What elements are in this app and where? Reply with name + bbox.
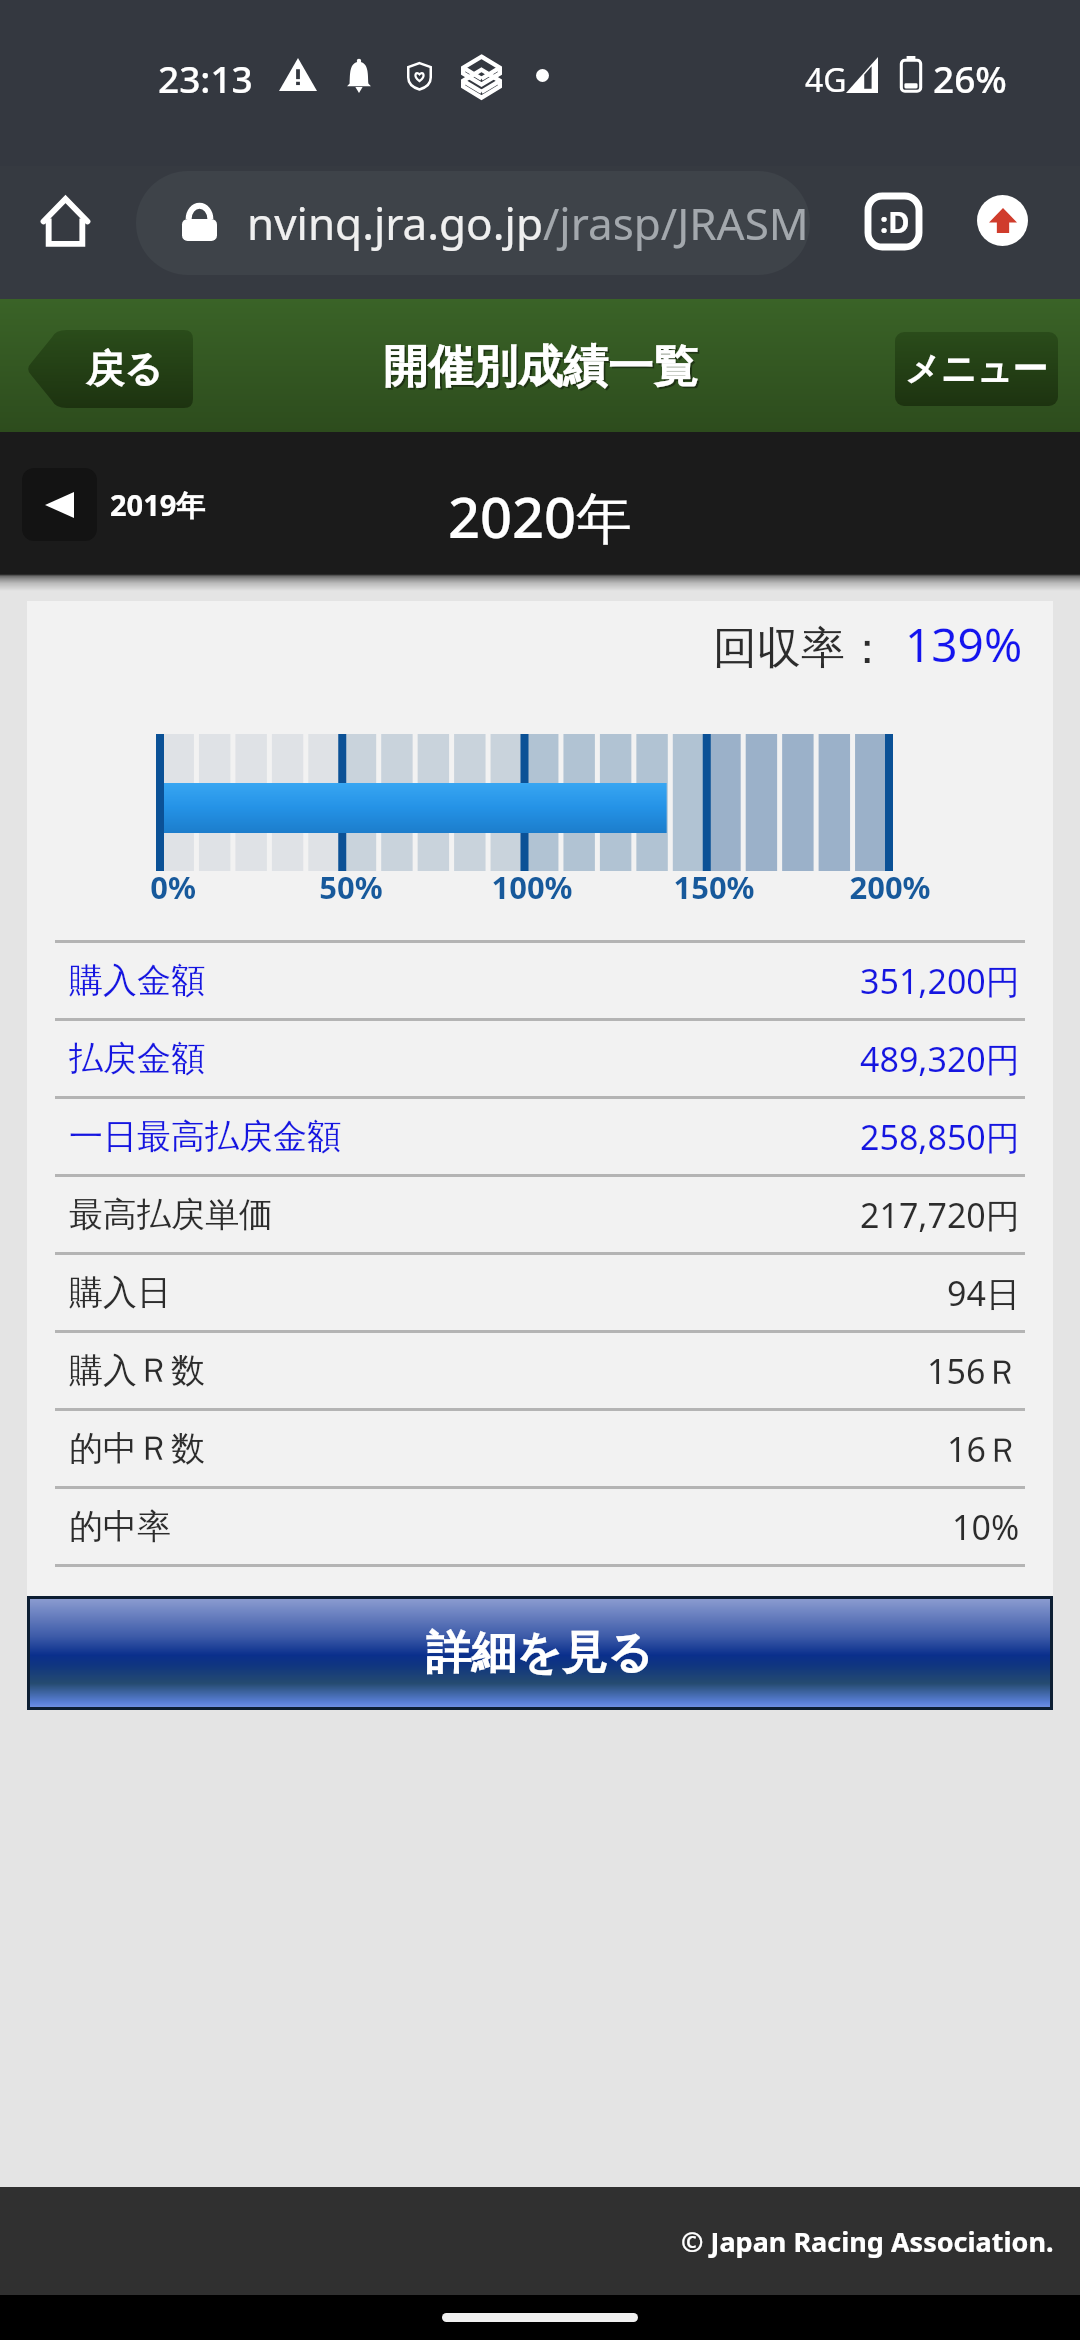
- button[interactable]: 購入日: [27, 1255, 1053, 1330]
- staticText: 258,850円: [860, 1114, 1020, 1160]
- staticText: 50%: [271, 866, 431, 908]
- staticText: 200%: [810, 866, 970, 908]
- staticText: 払戻金額: [69, 1037, 205, 1080]
- staticText: nvinq.jra.go.jp: [247, 193, 543, 253]
- staticText: 156Ｒ: [927, 1348, 1020, 1394]
- staticText: 0%: [93, 866, 253, 908]
- staticText: 351,200円: [860, 958, 1020, 1004]
- button[interactable]: nvinq.jra.go.jp: [136, 171, 810, 275]
- staticText: 139%: [905, 613, 1023, 676]
- staticText: 23:13: [158, 53, 253, 103]
- staticText: /jrasp/JRASM: [543, 193, 809, 253]
- staticText: 217,720円: [860, 1192, 1020, 1238]
- button[interactable]: 詳細を見る: [30, 1599, 1050, 1707]
- staticText: 一日最高払戻金額: [69, 1115, 341, 1158]
- button[interactable]: Update: [977, 195, 1028, 246]
- staticText: 10%: [952, 1504, 1020, 1550]
- staticText: 回収率：: [713, 621, 889, 676]
- staticText: 購入日: [69, 1271, 171, 1314]
- staticText: 26%: [933, 53, 1007, 103]
- staticText: 詳細を見る: [426, 1625, 654, 1682]
- button[interactable]: 払戻金額: [27, 1021, 1053, 1096]
- staticText: 戻る: [86, 345, 163, 393]
- button[interactable]: 一日最高払戻金額: [27, 1099, 1053, 1174]
- button[interactable]: 最高払戻単価: [27, 1177, 1053, 1252]
- staticText: 4G: [805, 58, 847, 102]
- staticText: 489,320円: [860, 1036, 1020, 1082]
- staticText: 的中Ｒ数: [69, 1427, 205, 1470]
- staticText: メニュー: [905, 347, 1048, 391]
- staticText: 開催別成績一覧: [385, 341, 700, 398]
- staticText: © Japan Racing Association.: [681, 2223, 1054, 2260]
- button[interactable]: メニュー: [895, 332, 1058, 406]
- staticText: 購入金額: [69, 959, 205, 1002]
- staticText: 16Ｒ: [947, 1426, 1020, 1472]
- staticText: 的中率: [69, 1505, 171, 1548]
- button[interactable]: 戻る: [25, 330, 193, 408]
- staticText: 150%: [634, 866, 794, 908]
- button[interactable]: 購入金額: [27, 943, 1053, 1018]
- staticText: 開催別成績一覧: [383, 339, 698, 396]
- button[interactable]: 2019年: [22, 468, 206, 541]
- button[interactable]: Home: [28, 184, 103, 259]
- staticText: 2019年: [110, 485, 206, 525]
- button[interactable]: 的中Ｒ数: [27, 1411, 1053, 1486]
- staticText: 購入Ｒ数: [69, 1349, 205, 1392]
- button[interactable]: Tabs: [855, 183, 931, 259]
- staticText: 最高払戻単価: [69, 1193, 273, 1236]
- staticText: 94日: [947, 1270, 1020, 1316]
- button[interactable]: 購入Ｒ数: [27, 1333, 1053, 1408]
- staticText: :D: [880, 202, 910, 241]
- staticText: 2020年: [448, 478, 633, 554]
- staticText: 100%: [452, 866, 612, 908]
- button[interactable]: 的中率: [27, 1489, 1053, 1564]
